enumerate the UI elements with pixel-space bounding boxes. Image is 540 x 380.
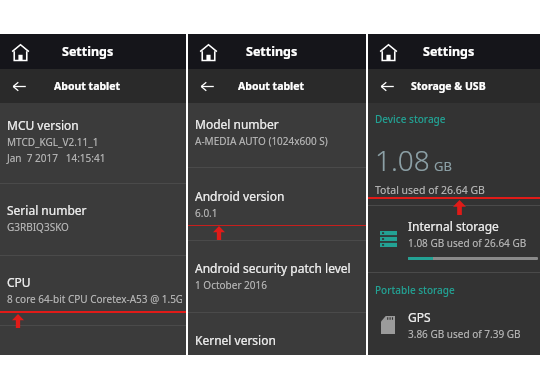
staticText: GPS — [408, 309, 431, 325]
staticText: Portable storage — [375, 283, 455, 297]
button[interactable]: Model number — [188, 107, 366, 157]
staticText: 3.86 GB used of 7.39 GB — [408, 327, 521, 341]
staticText: CPU — [7, 274, 31, 290]
staticText: Total used of 26.64 GB — [375, 183, 485, 197]
button[interactable]: MCU version — [0, 108, 186, 174]
button[interactable]: Home — [375, 39, 401, 65]
staticText: About tablet — [54, 79, 121, 93]
staticText: Device storage — [375, 112, 446, 126]
staticText: 1.08 — [375, 141, 430, 179]
staticText: Storage & USB — [411, 79, 486, 93]
staticText: GB — [434, 157, 452, 175]
staticText: 6.0.1 — [195, 206, 218, 220]
staticText: Settings — [62, 43, 114, 60]
button[interactable]: Internal storage — [368, 218, 540, 260]
button[interactable]: Home — [195, 39, 221, 65]
staticText: Kernel version — [195, 332, 276, 346]
staticText: Android version — [195, 188, 285, 204]
button[interactable]: Android security patch level — [188, 251, 366, 301]
other: Back — [7, 74, 31, 98]
button[interactable]: Back — [0, 69, 186, 103]
button[interactable]: Back — [188, 69, 366, 103]
button[interactable]: CPU — [0, 265, 186, 315]
staticText: Serial number — [7, 202, 87, 218]
button[interactable]: Kernel version — [188, 323, 366, 355]
staticText: 8 core 64-bit CPU Coretex-A53 @ 1.5G — [7, 292, 182, 306]
staticText: A-MEDIA AUTO (1024x600 S) — [195, 134, 328, 148]
staticText: Internal storage — [408, 218, 499, 234]
staticText: Android security patch level — [195, 260, 351, 276]
staticText: 1.08 GB used of 26.64 GB — [408, 236, 527, 250]
button[interactable]: Android version — [188, 179, 366, 229]
staticText: MTCD_KGL_V2.11_1 — [7, 135, 99, 149]
staticText: MCU version — [7, 117, 79, 133]
other: Back — [375, 74, 399, 98]
button[interactable]: GPS — [368, 309, 540, 341]
button[interactable]: Back — [368, 69, 540, 103]
other: Back — [195, 74, 219, 98]
staticText: About tablet — [238, 79, 305, 93]
staticText: Jan 7 2017 14:15:41 — [7, 151, 106, 165]
staticText: G3RBIQ3SKO — [7, 220, 69, 234]
staticText: Settings — [423, 43, 475, 60]
button[interactable]: Serial number — [0, 193, 186, 243]
staticText: Model number — [195, 116, 279, 132]
staticText: Settings — [246, 43, 298, 60]
staticText: 1 October 2016 — [195, 278, 267, 292]
button[interactable]: Home — [7, 39, 33, 65]
